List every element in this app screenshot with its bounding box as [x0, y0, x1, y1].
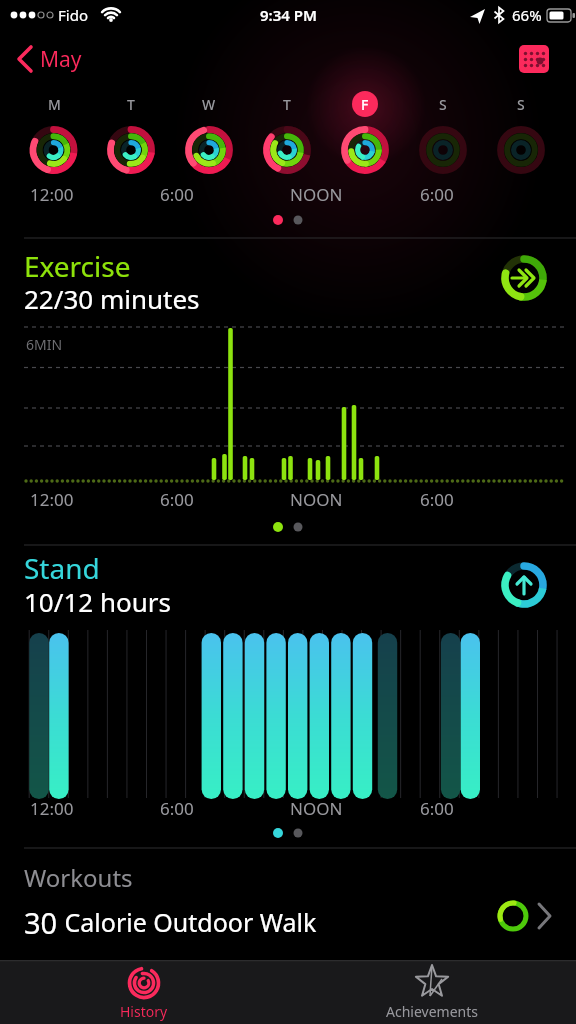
staticText: Workouts	[24, 861, 133, 894]
staticText: Stand	[24, 549, 100, 587]
staticText: 6:00	[420, 183, 454, 206]
button[interactable]	[512, 40, 556, 76]
button[interactable]: S	[482, 88, 560, 180]
staticText: 6:00	[160, 488, 194, 511]
staticText: NOON	[290, 488, 343, 511]
staticText: 6:00	[420, 488, 454, 511]
staticText: 30	[24, 903, 58, 942]
button[interactable]: History	[0, 960, 288, 1024]
button[interactable]: M	[15, 88, 92, 180]
staticText: Exercise	[24, 247, 131, 285]
staticText: W	[202, 95, 216, 114]
staticText: T	[127, 95, 135, 114]
button[interactable]: S	[404, 88, 482, 180]
staticText: NOON	[290, 183, 343, 206]
staticText: History	[120, 1002, 168, 1021]
button[interactable]	[497, 251, 551, 305]
button[interactable]: F	[326, 88, 404, 180]
staticText: 9:34 PM	[260, 5, 317, 25]
staticText: F	[361, 95, 369, 114]
staticText: 6:00	[420, 797, 454, 820]
staticText: May	[40, 45, 82, 74]
staticText: T	[283, 95, 291, 114]
button[interactable]: Workouts	[0, 850, 576, 958]
button[interactable]	[497, 558, 551, 612]
staticText: Calorie Outdoor Walk	[58, 905, 317, 939]
button[interactable]: Achievements	[288, 960, 576, 1024]
staticText: 6MIN	[26, 335, 63, 354]
staticText: 12:00	[30, 183, 74, 206]
staticText: Fido	[58, 5, 88, 25]
button[interactable]: T	[92, 88, 170, 180]
staticText: 22/30 minutes	[24, 281, 200, 316]
staticText: 6:00	[160, 183, 194, 206]
staticText: 12:00	[30, 488, 74, 511]
staticText: S	[439, 95, 447, 114]
button[interactable]: May	[10, 42, 106, 76]
staticText: 6:00	[160, 797, 194, 820]
staticText: M	[48, 95, 61, 114]
staticText: NOON	[290, 797, 343, 820]
button[interactable]: W	[170, 88, 248, 180]
staticText: 66%	[512, 5, 542, 25]
staticText: S	[517, 95, 525, 114]
button[interactable]: T	[248, 88, 326, 180]
staticText: Achievements	[386, 1002, 478, 1021]
staticText: 10/12 hours	[24, 584, 171, 619]
staticText: 12:00	[30, 797, 74, 820]
